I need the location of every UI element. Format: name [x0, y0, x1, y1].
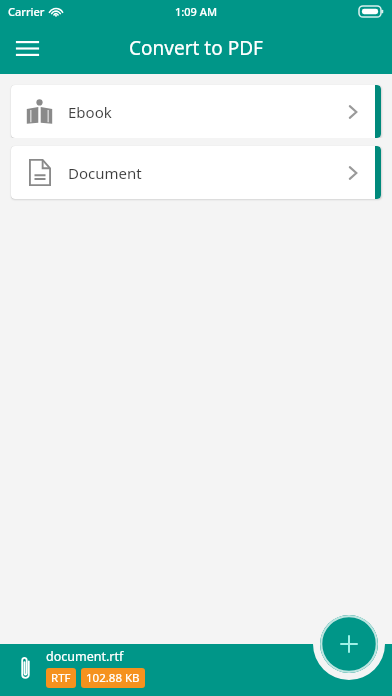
button[interactable]: Document	[11, 146, 381, 199]
staticText: document.rtf	[46, 648, 124, 665]
staticText: RTF	[51, 670, 71, 686]
button[interactable]: Attachment	[10, 653, 40, 683]
staticText: Ebook	[68, 102, 112, 122]
staticText: Document	[68, 163, 142, 183]
staticText: Carrier	[8, 4, 45, 19]
staticText: Convert to PDF	[129, 35, 263, 61]
button[interactable]: Menu	[8, 29, 46, 67]
button[interactable]: Add	[320, 615, 378, 673]
staticText: 1:09 AM	[175, 4, 218, 19]
button[interactable]: Ebook	[11, 85, 381, 138]
staticText: 102.88 KB	[86, 670, 140, 686]
